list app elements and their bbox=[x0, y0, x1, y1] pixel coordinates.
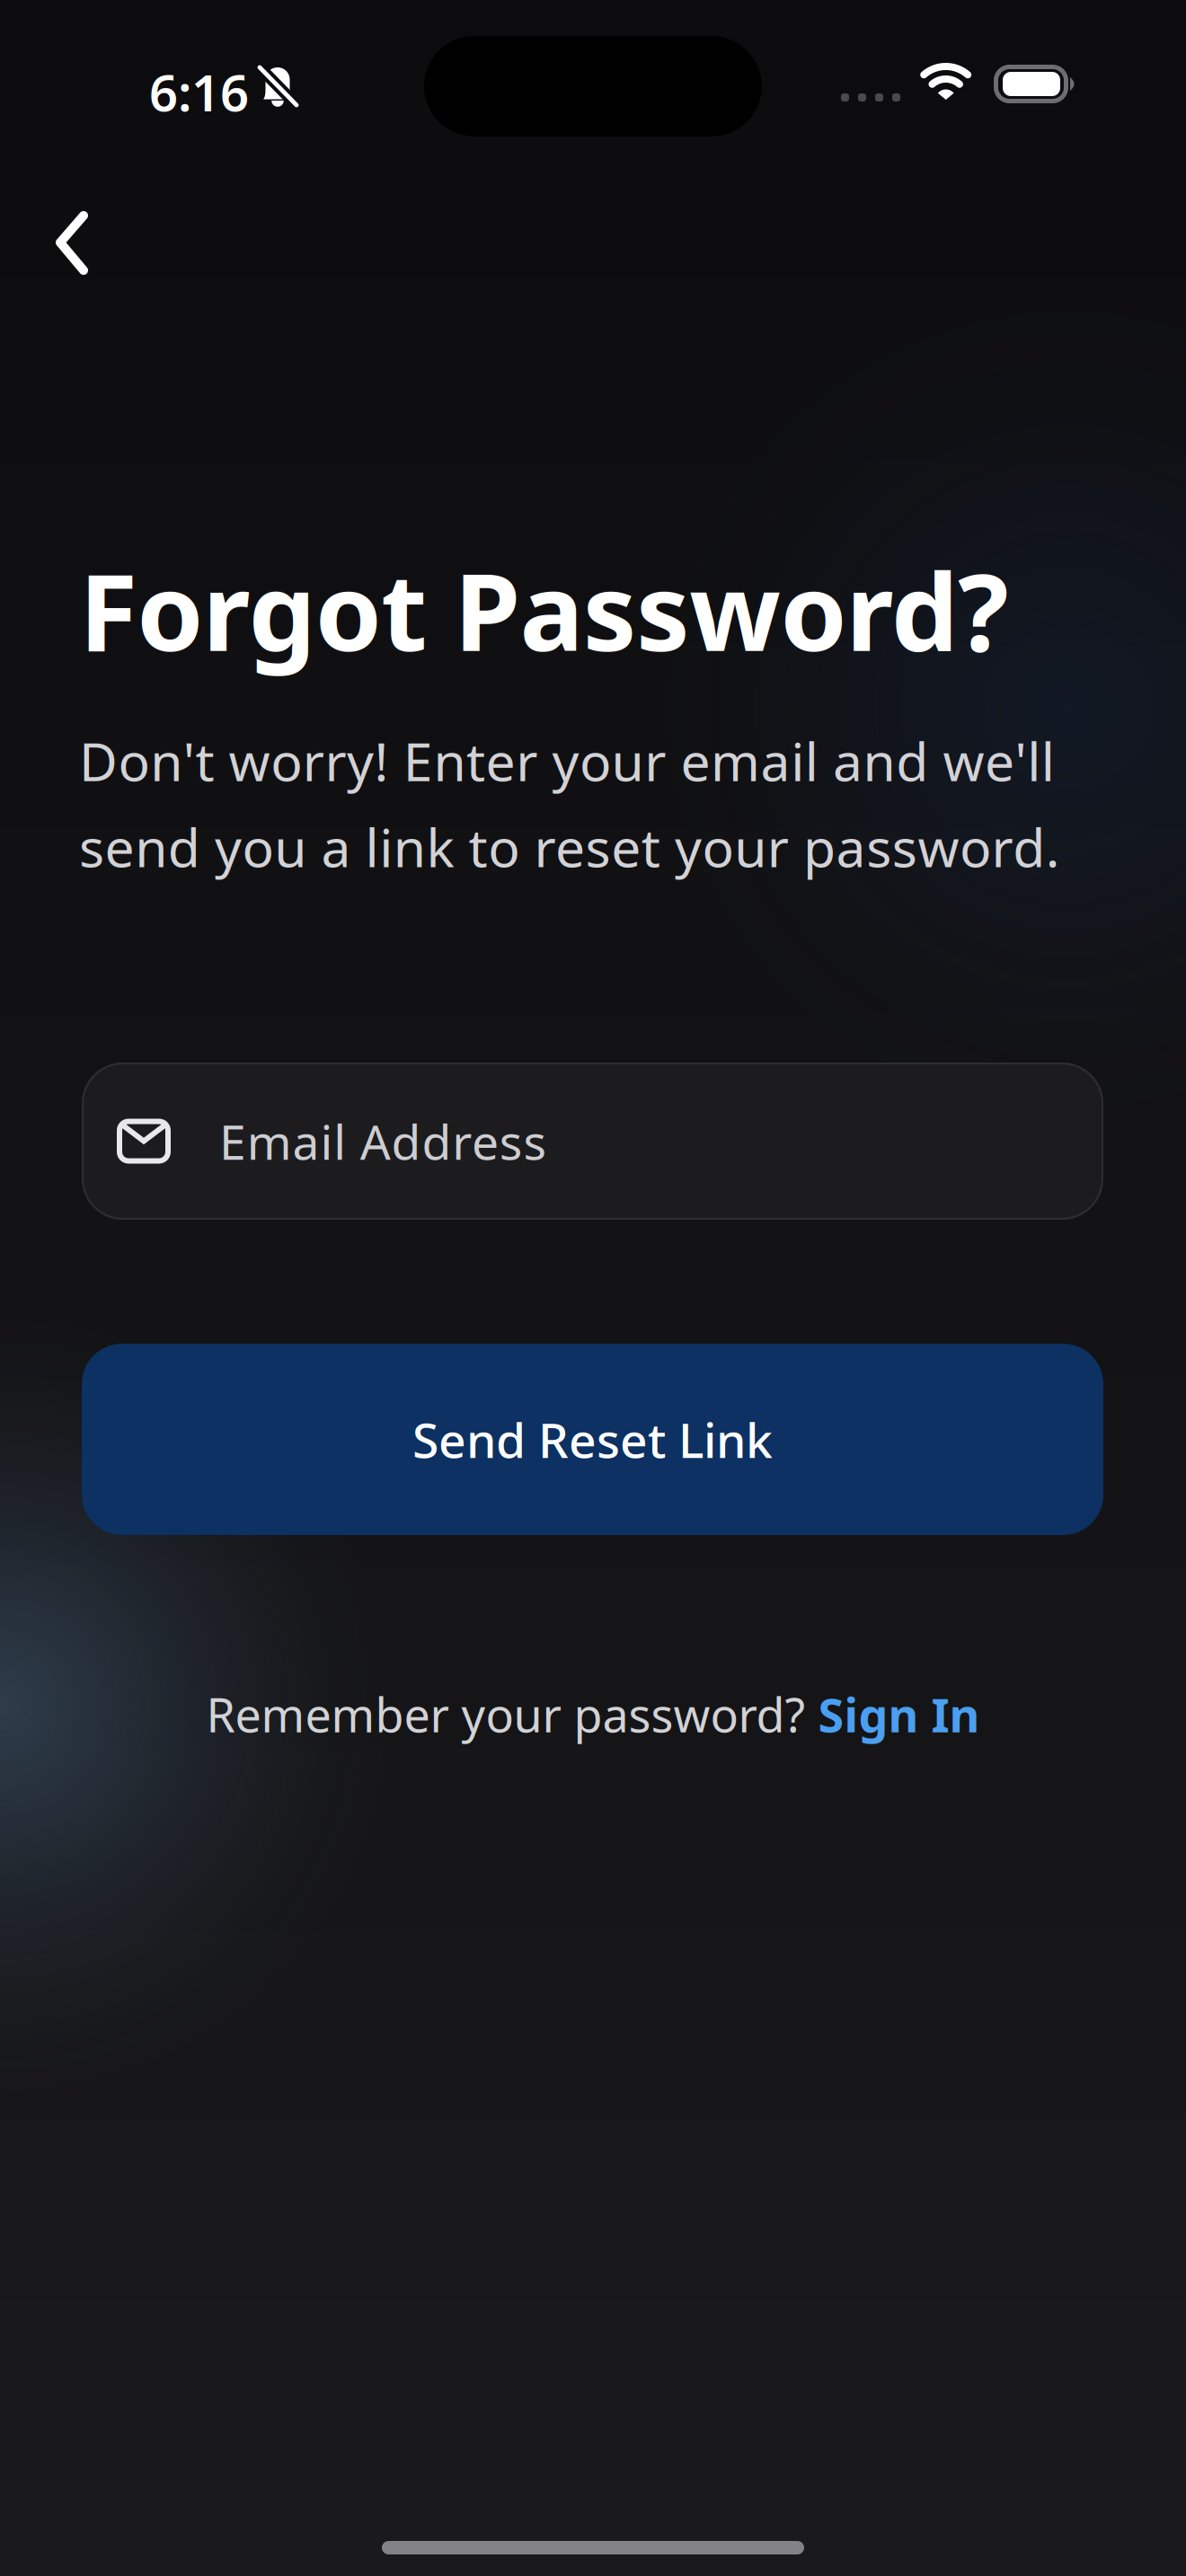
button[interactable] bbox=[38, 193, 110, 293]
button[interactable]: Send Reset Link bbox=[82, 1344, 1103, 1535]
staticText: 6:16 bbox=[149, 58, 249, 125]
staticText: Send Reset Link bbox=[412, 1408, 773, 1471]
staticText: Don't worry! Enter your email and we'll … bbox=[79, 726, 1060, 882]
staticText: Forgot Password? bbox=[79, 539, 1009, 680]
button[interactable]: Sign In bbox=[818, 1683, 980, 1745]
button[interactable]: Email Address bbox=[82, 1063, 1103, 1220]
staticText: Email Address bbox=[219, 1109, 547, 1173]
staticText: Sign In bbox=[818, 1683, 980, 1745]
staticText: Remember your password? bbox=[206, 1683, 818, 1745]
